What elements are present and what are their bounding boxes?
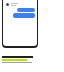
button[interactable] bbox=[17, 8, 35, 12]
button[interactable] bbox=[13, 13, 35, 18]
button[interactable] bbox=[6, 3, 37, 6]
